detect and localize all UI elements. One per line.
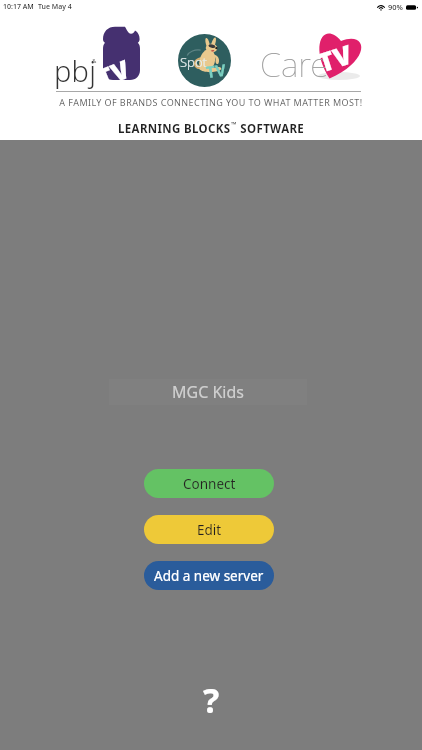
staticText: ? bbox=[203, 677, 220, 715]
staticText: Add a new server bbox=[154, 567, 264, 585]
button[interactable]: Edit bbox=[144, 515, 274, 544]
staticText: SOFTWARE bbox=[237, 121, 305, 137]
staticText: Edit bbox=[197, 521, 222, 539]
staticText: TV bbox=[313, 36, 357, 79]
button[interactable]: Connect bbox=[144, 469, 274, 498]
button[interactable]: MGC Kids bbox=[109, 379, 307, 405]
staticText: & bbox=[92, 57, 97, 65]
staticText: 10:17 AM bbox=[3, 2, 34, 12]
staticText: A FAMILY OF BRANDS CONNECTING YOU TO WHA… bbox=[0, 96, 422, 108]
staticText: ™ bbox=[231, 120, 237, 130]
staticText: pbj bbox=[54, 51, 97, 90]
staticText: LEARNING BLOCKS bbox=[118, 121, 231, 137]
staticText: Spot bbox=[180, 53, 207, 71]
staticText: 90% bbox=[388, 2, 403, 12]
staticText: TV bbox=[205, 59, 227, 81]
staticText: Care bbox=[260, 41, 329, 87]
button[interactable]: Help bbox=[191, 677, 231, 715]
staticText: TV bbox=[92, 51, 133, 91]
staticText: MGC Kids bbox=[172, 381, 244, 403]
button[interactable]: Add a new server bbox=[144, 561, 274, 590]
staticText: Tue May 4 bbox=[38, 2, 72, 12]
staticText: Connect bbox=[183, 475, 236, 493]
